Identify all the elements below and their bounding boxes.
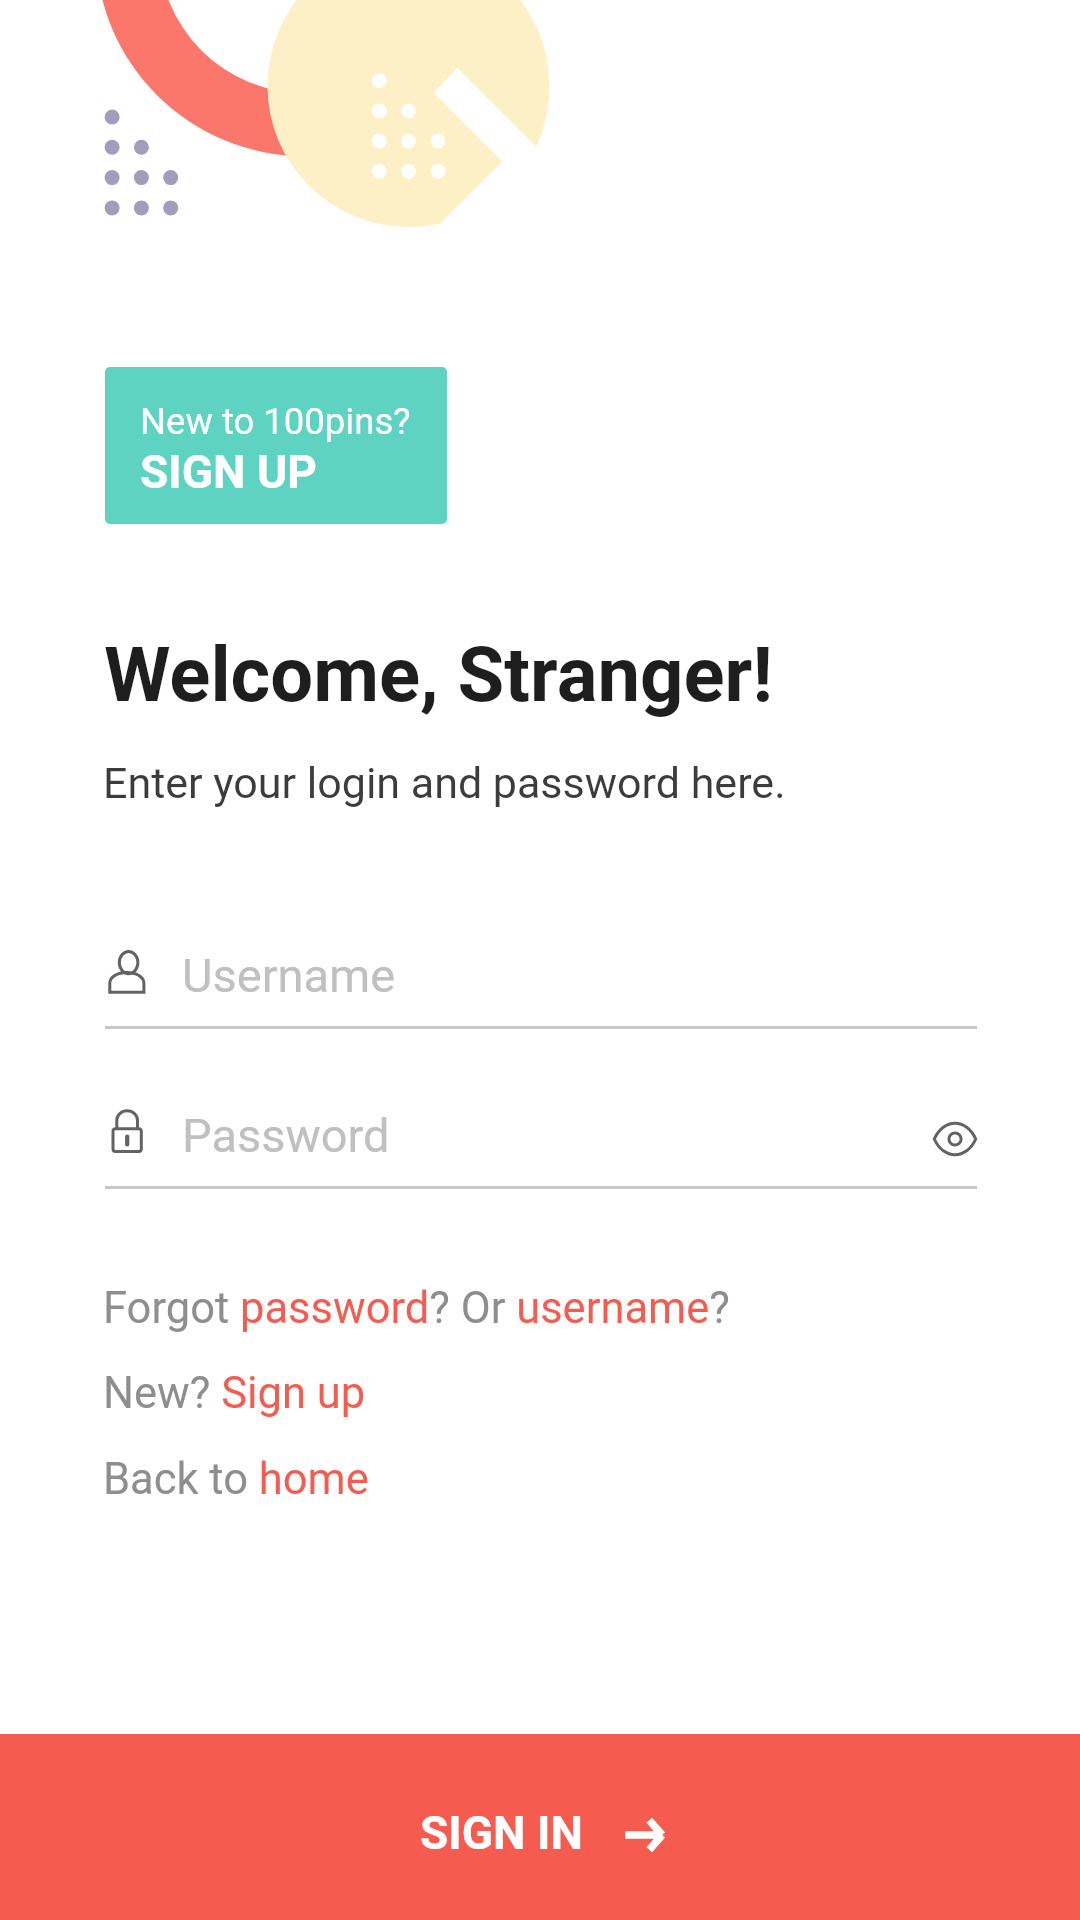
staticText: Username [182,948,396,1003]
staticText: SIGN IN [420,1806,583,1860]
button[interactable]: Forgot password? Or username? [103,1283,730,1334]
staticText: New to 100pins? [140,400,411,443]
staticText: SIGN UP [140,445,317,499]
button[interactable]: Password [105,1090,977,1190]
staticText: Back to home [103,1454,369,1505]
staticText: Welcome, Stranger! [104,630,773,719]
button[interactable]: SIGN IN [0,1734,1080,1920]
button[interactable]: Username [105,930,977,1030]
button[interactable]: New? Sign up [103,1368,366,1419]
staticText: Enter your login and password here. [103,758,786,808]
staticText: Forgot password? Or username? [103,1283,730,1334]
staticText: Password [182,1108,390,1163]
staticText: New? Sign up [103,1368,366,1419]
button[interactable]: New to 100pins? [105,367,447,524]
button[interactable]: Back to home [103,1454,369,1505]
button[interactable]: Show password [914,1093,996,1185]
